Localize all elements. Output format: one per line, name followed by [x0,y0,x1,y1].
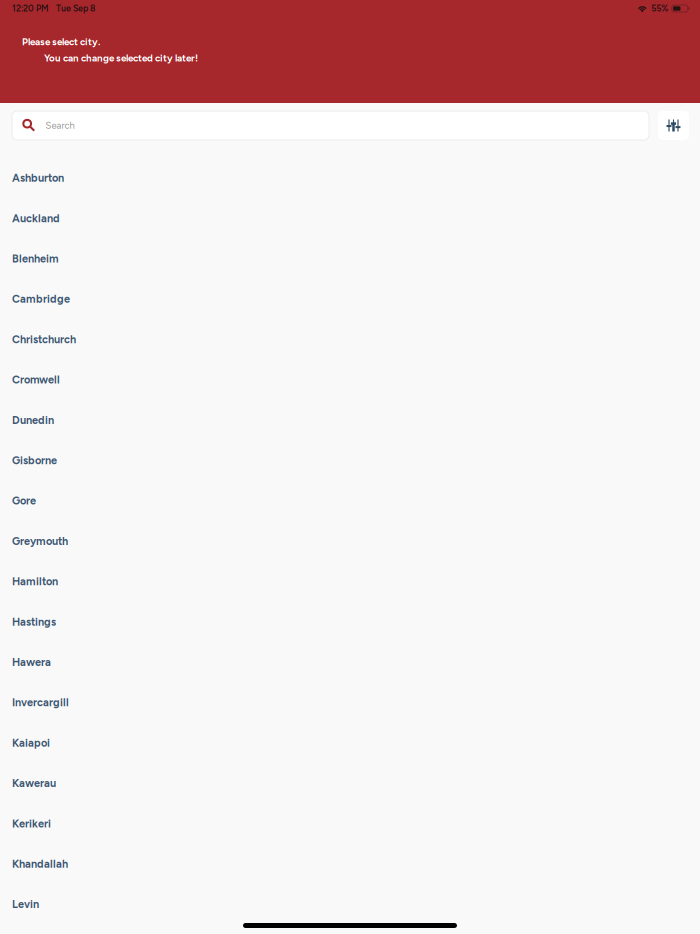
button[interactable]: Hawera [0,642,700,682]
staticText: Hastings [12,615,56,628]
button[interactable]: Search [12,111,649,140]
button[interactable]: Christchurch [0,319,700,360]
button[interactable]: Gisborne [0,440,700,481]
button[interactable]: Cromwell [0,360,700,400]
button[interactable]: Ashburton [0,158,700,198]
staticText: Hawera [12,656,51,669]
staticText: Gore [12,494,36,507]
staticText: Levin [12,898,39,911]
staticText: 12:20 PM [12,3,49,14]
button[interactable]: Cambridge [0,279,700,319]
button[interactable]: Hamilton [0,561,700,602]
staticText: Hamilton [12,575,58,588]
staticText: Ashburton [12,171,64,184]
button[interactable]: Kerikeri [0,803,700,844]
button[interactable]: Blenheim [0,238,700,279]
staticText: Search [45,120,74,131]
button[interactable]: Kaiapoi [0,723,700,763]
staticText: Kerikeri [12,817,51,830]
button[interactable]: Dunedin [0,400,700,440]
button[interactable]: Filter [658,111,689,140]
staticText: Christchurch [12,333,76,346]
staticText: Auckland [12,212,60,225]
staticText: Blenheim [12,252,59,265]
staticText: Dunedin [12,413,54,427]
staticText: Cambridge [12,292,70,306]
staticText: 55% [651,3,668,14]
staticText: Greymouth [12,535,68,548]
staticText: Invercargill [12,696,69,709]
staticText: Gisborne [12,454,57,467]
button[interactable]: Auckland [0,198,700,239]
button[interactable]: Kawerau [0,763,700,803]
staticText: Kawerau [12,777,56,790]
staticText: Please select city. [22,36,100,48]
staticText: Tue Sep 8 [56,3,95,14]
button[interactable]: Hastings [0,602,700,642]
button[interactable]: Greymouth [0,521,700,561]
button[interactable]: Khandallah [0,844,700,884]
staticText: You can change selected city later! [44,52,198,64]
button[interactable]: Gore [0,481,700,521]
staticText: Kaiapoi [12,736,50,749]
button[interactable]: Levin [0,884,700,924]
staticText: Cromwell [12,373,60,386]
staticText: Khandallah [12,857,68,870]
button[interactable]: Invercargill [0,682,700,723]
